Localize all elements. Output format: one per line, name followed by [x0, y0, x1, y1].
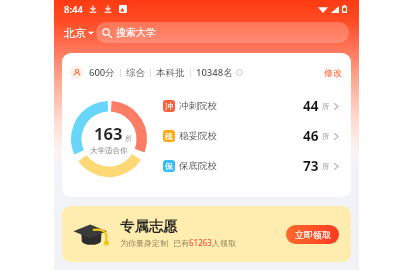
button[interactable]: 搜索大学 — [96, 22, 349, 43]
staticText: 所 — [322, 162, 330, 171]
staticText: 8:44 — [64, 3, 83, 16]
other: Download — [89, 5, 97, 13]
button[interactable]: 保 — [163, 157, 338, 175]
staticText: 专属志愿 — [120, 217, 178, 235]
button[interactable]: 稳 — [163, 127, 338, 145]
staticText: 稳妥院校 — [179, 130, 217, 142]
staticText: 已有 — [173, 238, 189, 248]
other: Graduation cap — [72, 223, 112, 246]
staticText: 保底院校 — [179, 160, 217, 172]
staticText: 所 — [125, 134, 132, 143]
staticText: 搜索大学 — [116, 26, 156, 39]
staticText: 46 — [303, 127, 319, 145]
staticText: 61263 — [189, 237, 212, 248]
button[interactable]: 冲 — [163, 97, 338, 115]
staticText: 北京 — [64, 26, 86, 40]
button[interactable]: 修改 — [324, 67, 342, 78]
staticText: 600分 — [89, 66, 115, 79]
staticText: 44 — [303, 97, 319, 115]
staticText: 为你量身定制 — [120, 238, 168, 248]
staticText: 稳 — [165, 131, 173, 141]
button[interactable]: 北京 — [63, 26, 95, 40]
staticText: 立即领取 — [295, 229, 331, 240]
staticText: 人领取 — [212, 238, 236, 248]
other: Screenshot — [119, 5, 127, 13]
staticText: 冲 — [165, 101, 173, 111]
staticText: 10348名 — [196, 66, 233, 79]
staticText: 73 — [303, 157, 319, 175]
button[interactable]: 立即领取 — [286, 225, 339, 244]
staticText: 大学适合你 — [90, 146, 128, 155]
staticText: 本科批 — [156, 67, 185, 79]
button[interactable]: Graduation cap — [62, 206, 351, 262]
staticText: 冲刺院校 — [179, 100, 217, 112]
staticText: 所 — [322, 102, 330, 111]
staticText: 所 — [322, 132, 330, 141]
staticText: 163 — [94, 122, 123, 144]
staticText: 综合 — [126, 67, 145, 79]
staticText: 保 — [165, 161, 173, 171]
other: Download — [104, 5, 112, 13]
